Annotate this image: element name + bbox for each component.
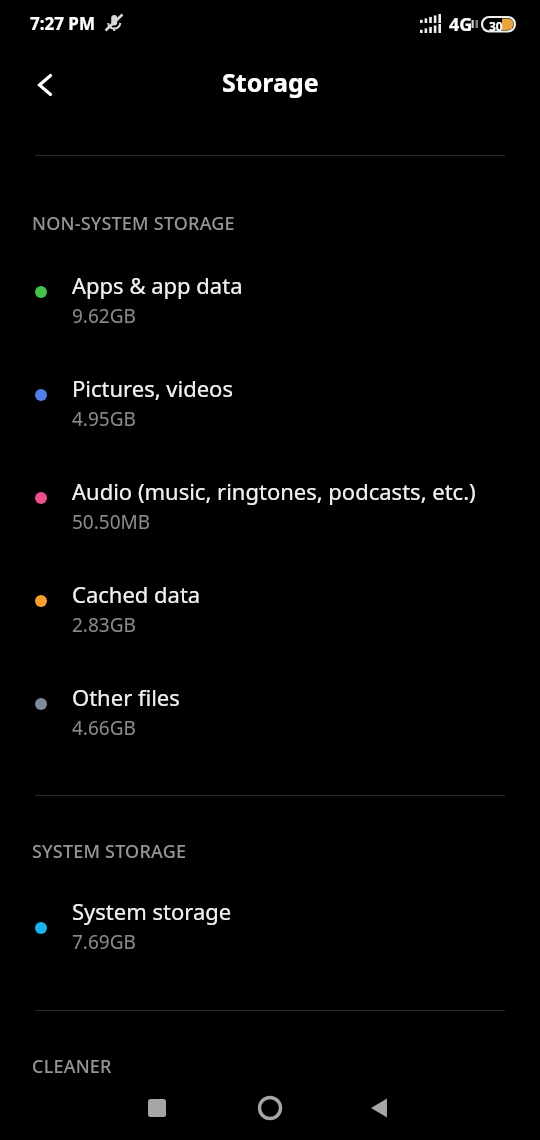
button[interactable]: Pictures, videos	[0, 373, 540, 439]
staticText: 7:27 PM	[30, 12, 95, 35]
button[interactable]: System storage	[0, 896, 540, 962]
staticText: Storage	[222, 65, 319, 99]
staticText: 2.83GB	[72, 612, 136, 638]
button[interactable]	[23, 63, 67, 107]
button[interactable]	[130, 1082, 184, 1134]
button[interactable]: Other files	[0, 682, 540, 748]
staticText: Cached data	[72, 579, 201, 609]
button[interactable]: Audio (music, ringtones, podcasts, etc.)	[0, 476, 540, 542]
staticText: Pictures, videos	[72, 373, 233, 403]
staticText: Other files	[72, 682, 180, 712]
staticText: 9.62GB	[72, 303, 136, 329]
staticText: NON-SYSTEM STORAGE	[32, 211, 235, 236]
staticText: Audio (music, ringtones, podcasts, etc.)	[72, 476, 476, 506]
button[interactable]: Apps & app data	[0, 270, 540, 336]
staticText: 30	[489, 18, 503, 34]
button[interactable]	[353, 1082, 407, 1134]
staticText: SYSTEM STORAGE	[32, 839, 187, 864]
staticText: 50.50MB	[72, 509, 151, 535]
staticText: System storage	[72, 896, 232, 926]
staticText: Apps & app data	[72, 270, 243, 300]
button[interactable]	[243, 1082, 297, 1134]
staticText: 4G	[449, 12, 473, 37]
staticText: 4.66GB	[72, 715, 136, 741]
staticText: CLEANER	[32, 1054, 112, 1079]
staticText: 7.69GB	[72, 929, 136, 955]
staticText: 4.95GB	[72, 406, 136, 432]
button[interactable]: Cached data	[0, 579, 540, 645]
